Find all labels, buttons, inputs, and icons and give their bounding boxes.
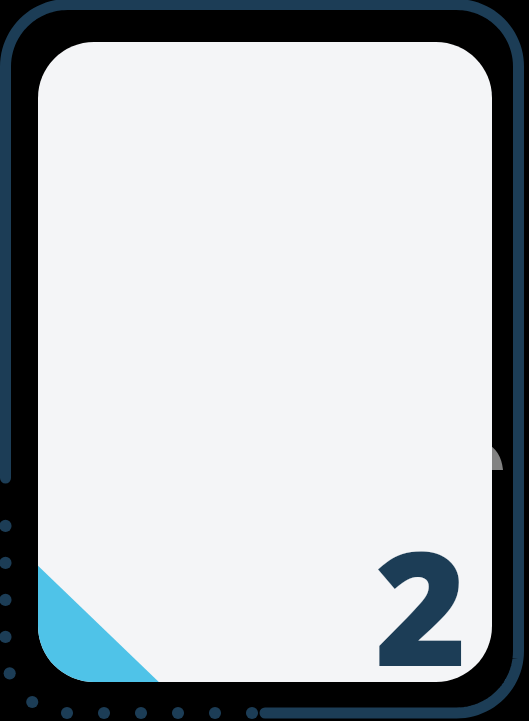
button[interactable]: Flash card number 2 bbox=[0, 0, 529, 721]
